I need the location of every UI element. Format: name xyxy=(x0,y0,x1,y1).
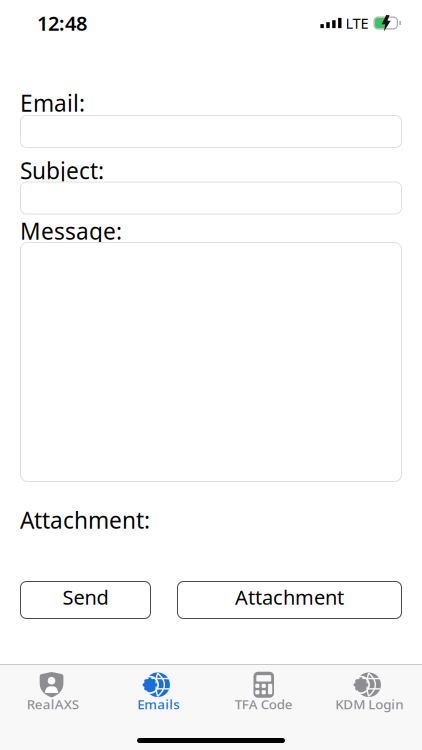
button[interactable]: TFA Code xyxy=(211,671,316,710)
staticText: 12:48 xyxy=(37,10,87,36)
staticText: Email: xyxy=(20,88,85,118)
staticText: KDM Login xyxy=(335,695,403,713)
staticText: Send xyxy=(62,584,108,610)
staticText: TFA Code xyxy=(235,695,293,713)
button[interactable]: Emails xyxy=(105,671,211,710)
staticText: Subject: xyxy=(20,155,104,185)
staticText: LTE xyxy=(345,13,368,33)
button[interactable]: Subject xyxy=(20,181,402,214)
staticText: Attachment: xyxy=(20,505,150,535)
button[interactable]: Send xyxy=(20,581,151,619)
button[interactable]: Attachment xyxy=(177,581,402,619)
staticText: Attachment xyxy=(235,584,344,610)
button[interactable]: Email xyxy=(20,115,402,148)
button[interactable]: KDM Login xyxy=(316,671,422,710)
staticText: RealAXS xyxy=(27,695,79,713)
staticText: Emails xyxy=(137,695,179,713)
button[interactable]: RealAXS xyxy=(0,671,105,710)
button[interactable]: Message xyxy=(20,242,402,482)
staticText: Message: xyxy=(20,216,122,246)
